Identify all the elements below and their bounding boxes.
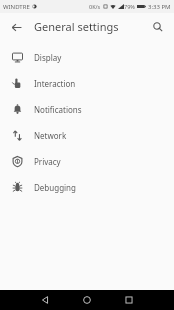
button[interactable]: Interaction bbox=[0, 70, 174, 96]
staticText: General settings bbox=[34, 19, 119, 34]
button[interactable]: Search bbox=[148, 17, 168, 37]
button[interactable]: Debugging bbox=[0, 174, 174, 200]
button[interactable]: Back bbox=[30, 290, 60, 310]
staticText: 0K/s bbox=[89, 3, 101, 10]
staticText: 79% bbox=[124, 3, 135, 10]
staticText: 3:33 PM bbox=[148, 3, 171, 11]
staticText: Network bbox=[34, 130, 67, 141]
staticText: Display bbox=[34, 52, 62, 63]
button[interactable]: Home bbox=[72, 290, 102, 310]
staticText: Debugging bbox=[34, 182, 76, 193]
button[interactable]: Display bbox=[0, 44, 174, 70]
button[interactable]: Notifications bbox=[0, 96, 174, 122]
button[interactable]: Recent apps bbox=[114, 290, 144, 310]
staticText: Privacy bbox=[34, 156, 61, 167]
button[interactable]: Network bbox=[0, 122, 174, 148]
button[interactable]: Privacy bbox=[0, 148, 174, 174]
staticText: WINDTRE bbox=[3, 3, 30, 11]
button[interactable]: Back bbox=[6, 17, 26, 37]
staticText: Interaction bbox=[34, 78, 76, 89]
staticText: Notifications bbox=[34, 104, 82, 115]
